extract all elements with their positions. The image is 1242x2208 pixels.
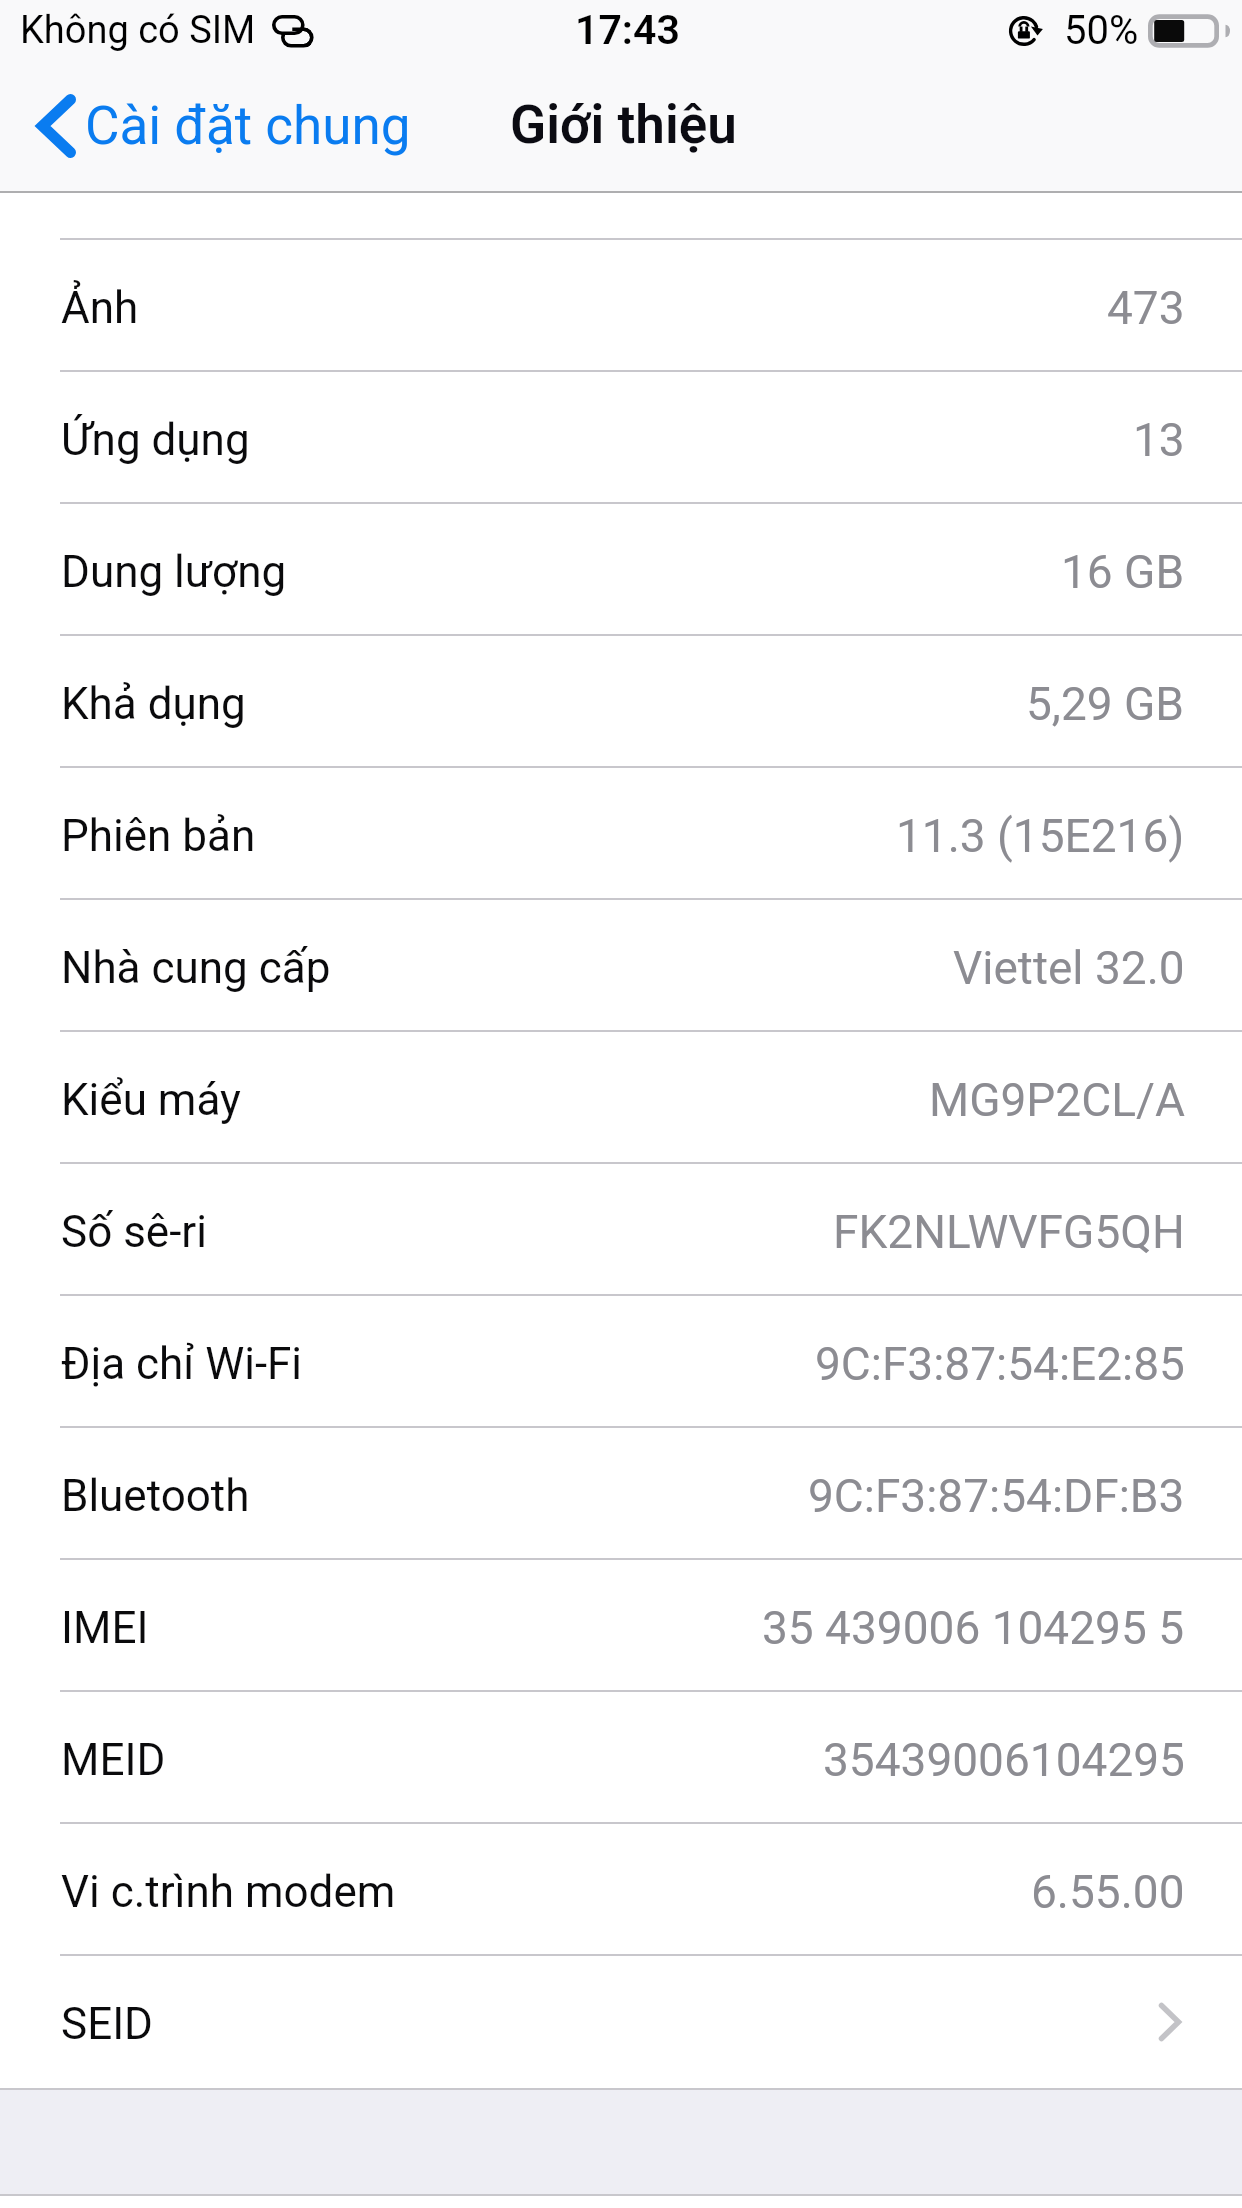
staticText: 9C:F3:87:54:E2:85 <box>815 1337 1185 1391</box>
staticText: 50% <box>1064 7 1139 54</box>
staticText: 11.3 (15E216) <box>896 809 1185 863</box>
staticText: 9C:F3:87:54:DF:B3 <box>808 1469 1185 1523</box>
staticText: MEID <box>61 1734 166 1786</box>
button[interactable]: Số sê-ri <box>0 1164 1242 1296</box>
staticText: Viettel 32.0 <box>953 941 1185 995</box>
staticText: 35439006104295 <box>823 1733 1185 1787</box>
staticText: Bluetooth <box>61 1470 250 1522</box>
staticText: SEID <box>61 1998 153 2050</box>
staticText: Dung lượng <box>61 546 287 598</box>
staticText: 5,29 GB <box>1026 677 1185 731</box>
button[interactable]: Dung lượng <box>0 504 1242 636</box>
staticText: Ứng dụng <box>61 414 250 466</box>
staticText: 13 <box>1133 413 1185 467</box>
staticText: Kiểu máy <box>61 1074 241 1126</box>
button[interactable]: MEID <box>0 1692 1242 1824</box>
staticText: Cài đặt chung <box>85 95 411 157</box>
staticText: FK2NLWVFG5QH <box>833 1205 1185 1259</box>
button[interactable]: Vi c.trình modem <box>0 1824 1242 1956</box>
staticText: 17:43 <box>575 6 680 54</box>
other: Battery 50 percent <box>1148 14 1227 48</box>
staticText: 473 <box>1107 281 1185 335</box>
staticText: Ảnh <box>61 282 139 334</box>
button[interactable]: Ảnh <box>0 240 1242 372</box>
button[interactable]: Phiên bản <box>0 768 1242 900</box>
staticText: Vi c.trình modem <box>61 1866 396 1918</box>
button[interactable]: Cài đặt chung <box>37 91 411 161</box>
staticText: Phiên bản <box>61 810 256 862</box>
staticText: Giới thiệu <box>510 94 737 156</box>
staticText: Nhà cung cấp <box>61 942 331 994</box>
button[interactable]: Kiểu máy <box>0 1032 1242 1164</box>
button[interactable]: Ứng dụng <box>0 372 1242 504</box>
staticText: Không có SIM <box>20 8 256 53</box>
staticText: 6.55.00 <box>1031 1865 1185 1919</box>
staticText: Khả dụng <box>61 678 246 730</box>
button[interactable]: SEID <box>0 1956 1242 2088</box>
staticText: MG9P2CL/A <box>929 1073 1185 1127</box>
button[interactable]: Khả dụng <box>0 636 1242 768</box>
staticText: Số sê-ri <box>61 1206 207 1258</box>
staticText: 35 439006 104295 5 <box>762 1601 1185 1655</box>
other: Personal hotspot <box>272 15 311 47</box>
button[interactable]: Địa chỉ Wi-Fi <box>0 1296 1242 1428</box>
staticText: Địa chỉ Wi-Fi <box>61 1338 303 1390</box>
button[interactable]: IMEI <box>0 1560 1242 1692</box>
button[interactable]: Bluetooth <box>0 1428 1242 1560</box>
button[interactable]: Nhà cung cấp <box>0 900 1242 1032</box>
other: Rotation lock <box>1009 15 1043 47</box>
staticText: 16 GB <box>1061 545 1185 599</box>
staticText: IMEI <box>61 1602 149 1654</box>
